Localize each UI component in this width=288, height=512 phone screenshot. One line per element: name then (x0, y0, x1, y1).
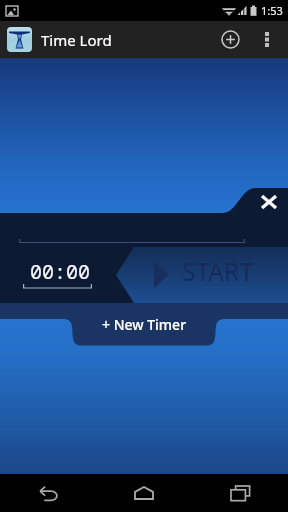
staticText: 1:53 (261, 3, 283, 18)
button[interactable]: + New Timer (52, 303, 236, 346)
staticText: START (182, 254, 254, 288)
button[interactable]: Close (254, 187, 283, 216)
staticText: Time Lord (41, 30, 112, 50)
button[interactable]: Add timer (208, 21, 252, 58)
button[interactable]: Back (0, 474, 96, 512)
button[interactable]: More options (252, 21, 282, 58)
staticText: 00:00 (30, 258, 90, 285)
button[interactable]: Home (96, 474, 192, 512)
button[interactable]: Recents (192, 474, 288, 512)
staticText: + New Timer (102, 315, 187, 334)
button[interactable]: 00:00 (10, 255, 110, 287)
